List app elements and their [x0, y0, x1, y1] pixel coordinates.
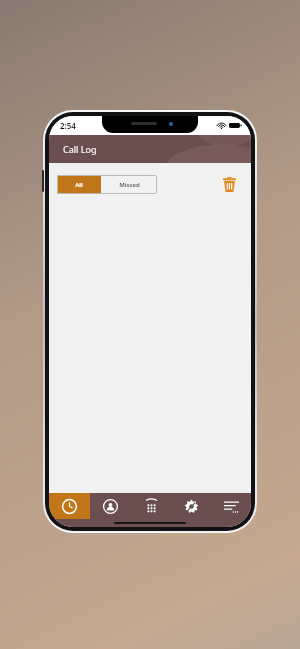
button[interactable]: Settings: [171, 493, 211, 519]
staticText: All: [75, 181, 83, 189]
button[interactable]: Dialpad: [131, 493, 171, 519]
staticText: Missed: [119, 181, 140, 189]
button[interactable]: Contacts: [90, 493, 131, 519]
button[interactable]: More options: [211, 493, 251, 519]
button[interactable]: Missed: [101, 175, 157, 194]
button[interactable]: Delete call log: [217, 172, 241, 196]
button[interactable]: All: [57, 175, 101, 194]
button[interactable]: Call log: [49, 493, 90, 519]
staticText: Call Log: [63, 143, 97, 155]
staticText: 2:54: [60, 120, 76, 131]
